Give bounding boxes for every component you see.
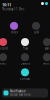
button[interactable]: Timer	[0, 53, 10, 65]
staticText: Notes	[43, 62, 50, 65]
staticText: Scan	[44, 47, 49, 50]
staticText: 10:11	[2, 2, 11, 7]
staticText: Record	[0, 47, 8, 50]
button[interactable]: Scan	[40, 38, 50, 50]
button[interactable]: Contact	[18, 68, 32, 80]
button[interactable]: Lock	[29, 22, 43, 34]
staticText: Timer	[0, 62, 6, 65]
button[interactable]: Notes	[40, 53, 50, 65]
staticText: Focus	[10, 30, 17, 34]
button[interactable]: Record	[0, 38, 10, 50]
button[interactable]: Camera	[18, 53, 32, 65]
staticText: Notification	[10, 89, 26, 93]
button[interactable]: Play	[18, 38, 32, 50]
staticText: Contact	[20, 77, 30, 80]
staticText: Camera	[20, 62, 29, 65]
staticText: Thursday 11 Dec	[2, 7, 24, 11]
button[interactable]: Focus	[7, 22, 21, 34]
button[interactable]: Notification	[2, 88, 48, 97]
staticText: Lock	[33, 30, 38, 34]
staticText: Play	[22, 47, 27, 50]
staticText: Detail text here	[10, 93, 31, 96]
